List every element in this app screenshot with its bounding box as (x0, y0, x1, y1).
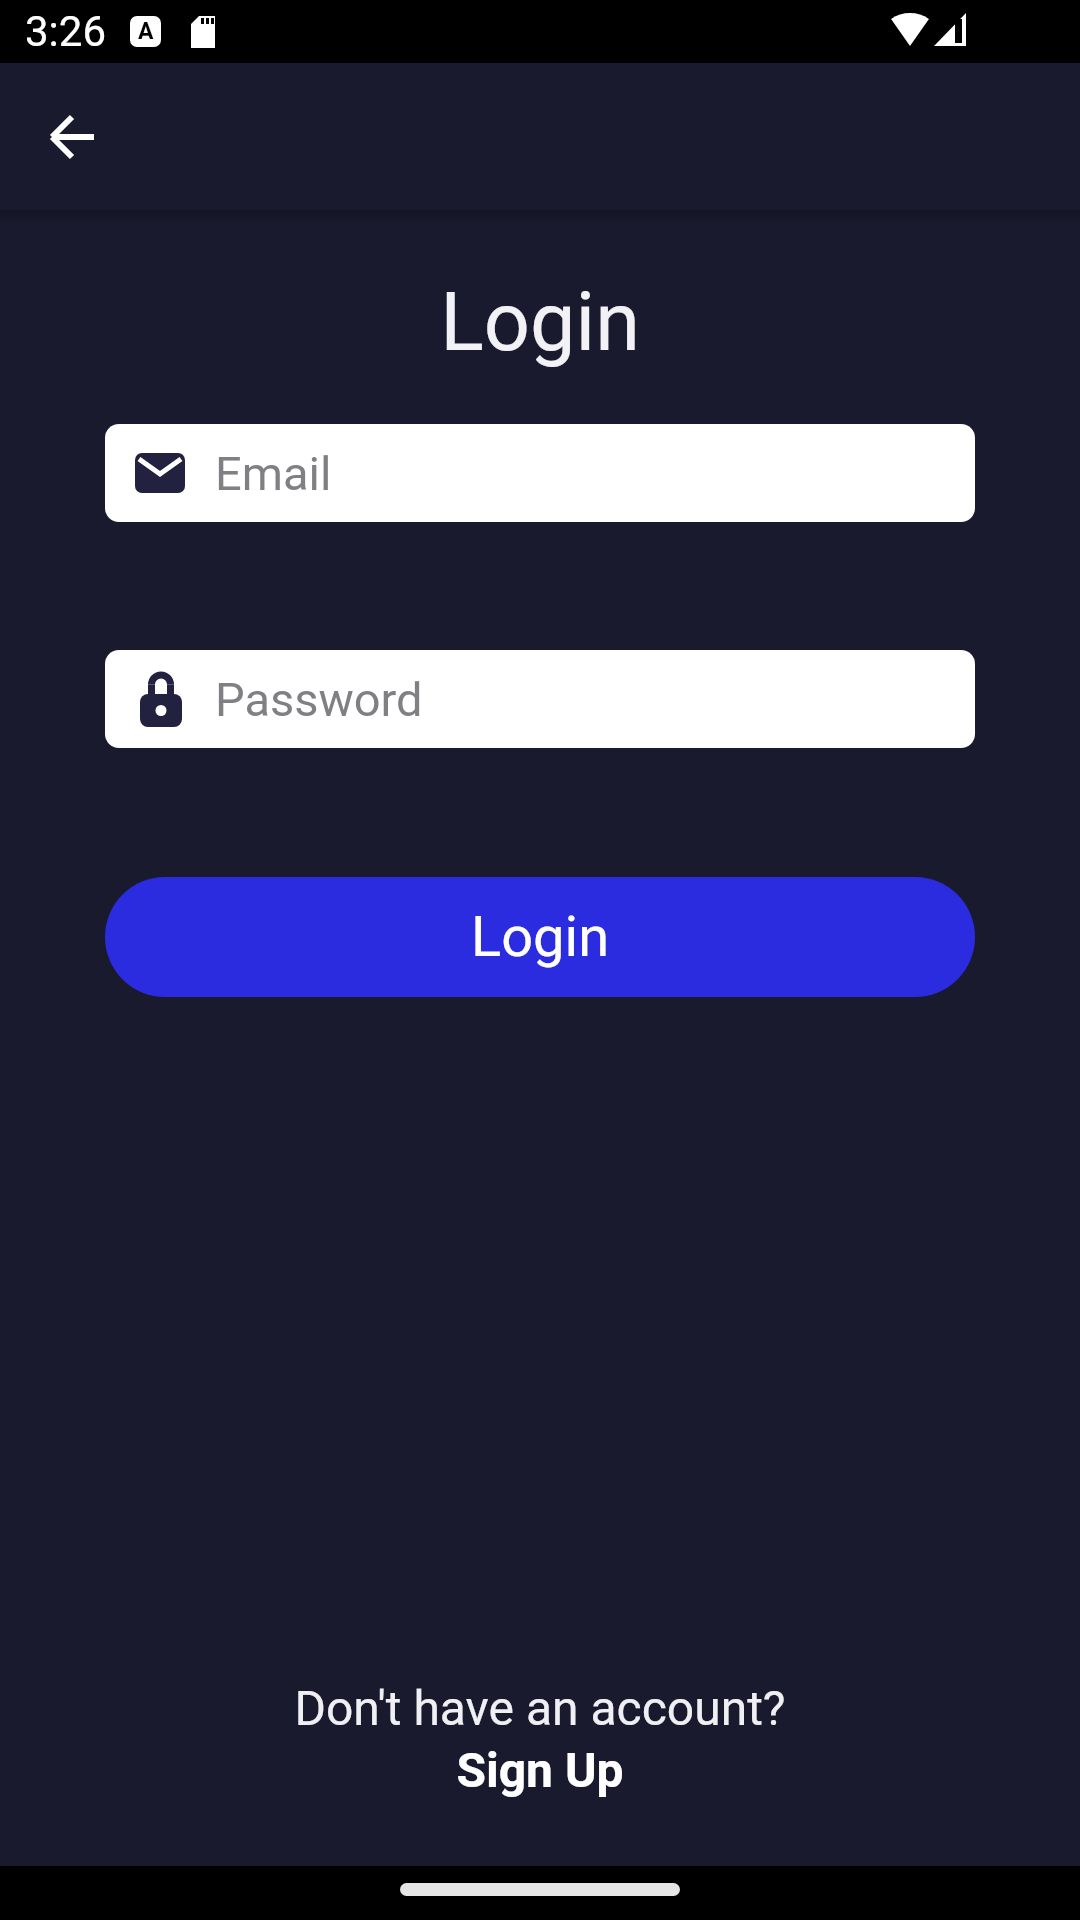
button[interactable]: Password (105, 650, 975, 748)
staticText: 3:26 (25, 7, 106, 56)
button[interactable]: Login (105, 877, 975, 997)
staticText: Email (215, 446, 332, 501)
staticText: Password (215, 672, 423, 727)
button[interactable]: Sign Up (0, 1742, 1080, 1798)
staticText: A (138, 18, 154, 45)
button[interactable]: Email (105, 424, 975, 522)
button[interactable] (49, 113, 97, 161)
staticText: Login (0, 275, 1080, 370)
staticText: Login (471, 904, 610, 970)
staticText: Don't have an account? (0, 1680, 1080, 1736)
